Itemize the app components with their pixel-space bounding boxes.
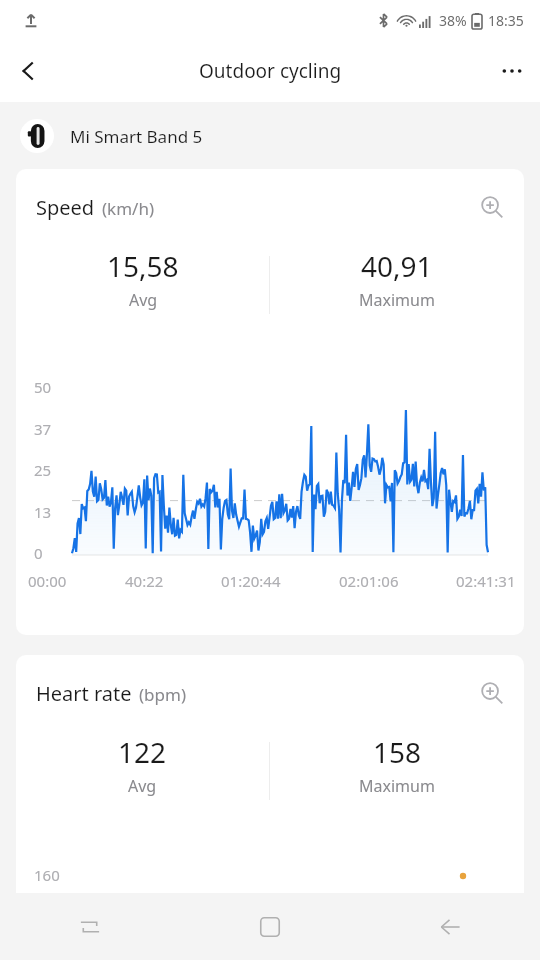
staticText: Maximum	[359, 775, 435, 797]
button[interactable]: Home	[180, 893, 360, 960]
staticText: 40,91	[361, 247, 433, 285]
staticText: Mi Smart Band 5	[70, 125, 203, 148]
staticText: 158	[373, 733, 422, 771]
staticText: (bpm)	[139, 683, 187, 706]
staticText: 0	[34, 543, 43, 563]
button[interactable]: Mi Smart Band 5	[0, 110, 540, 162]
button[interactable]: Back	[360, 893, 540, 960]
staticText: Avg	[128, 775, 157, 797]
staticText: Avg	[129, 289, 158, 311]
button[interactable]: Zoom in chart	[470, 671, 514, 715]
staticText: 18:35	[488, 11, 524, 30]
staticText: Outdoor cycling	[199, 58, 342, 84]
staticText: Speed	[36, 194, 95, 221]
staticText: 02:41:31	[456, 571, 516, 591]
button[interactable]: More options	[484, 43, 540, 99]
staticText: 15,58	[107, 247, 179, 285]
staticText: 122	[118, 733, 167, 771]
staticText: 37	[34, 419, 52, 439]
button[interactable]: Zoom in chart	[470, 185, 514, 229]
staticText: (km/h)	[102, 197, 155, 220]
staticText: 160	[34, 865, 60, 885]
staticText: 50	[34, 377, 52, 397]
staticText: 25	[34, 460, 52, 480]
staticText: 00:00	[28, 571, 67, 591]
staticText: 01:20:44	[221, 571, 281, 591]
staticText: 40:22	[125, 571, 164, 591]
button[interactable]: Recent apps	[0, 893, 180, 960]
staticText: Maximum	[359, 289, 435, 311]
staticText: 38%	[439, 11, 467, 30]
staticText: 02:01:06	[339, 571, 399, 591]
button[interactable]: Back	[0, 43, 56, 99]
staticText: 13	[34, 502, 52, 522]
staticText: Heart rate	[36, 680, 132, 707]
